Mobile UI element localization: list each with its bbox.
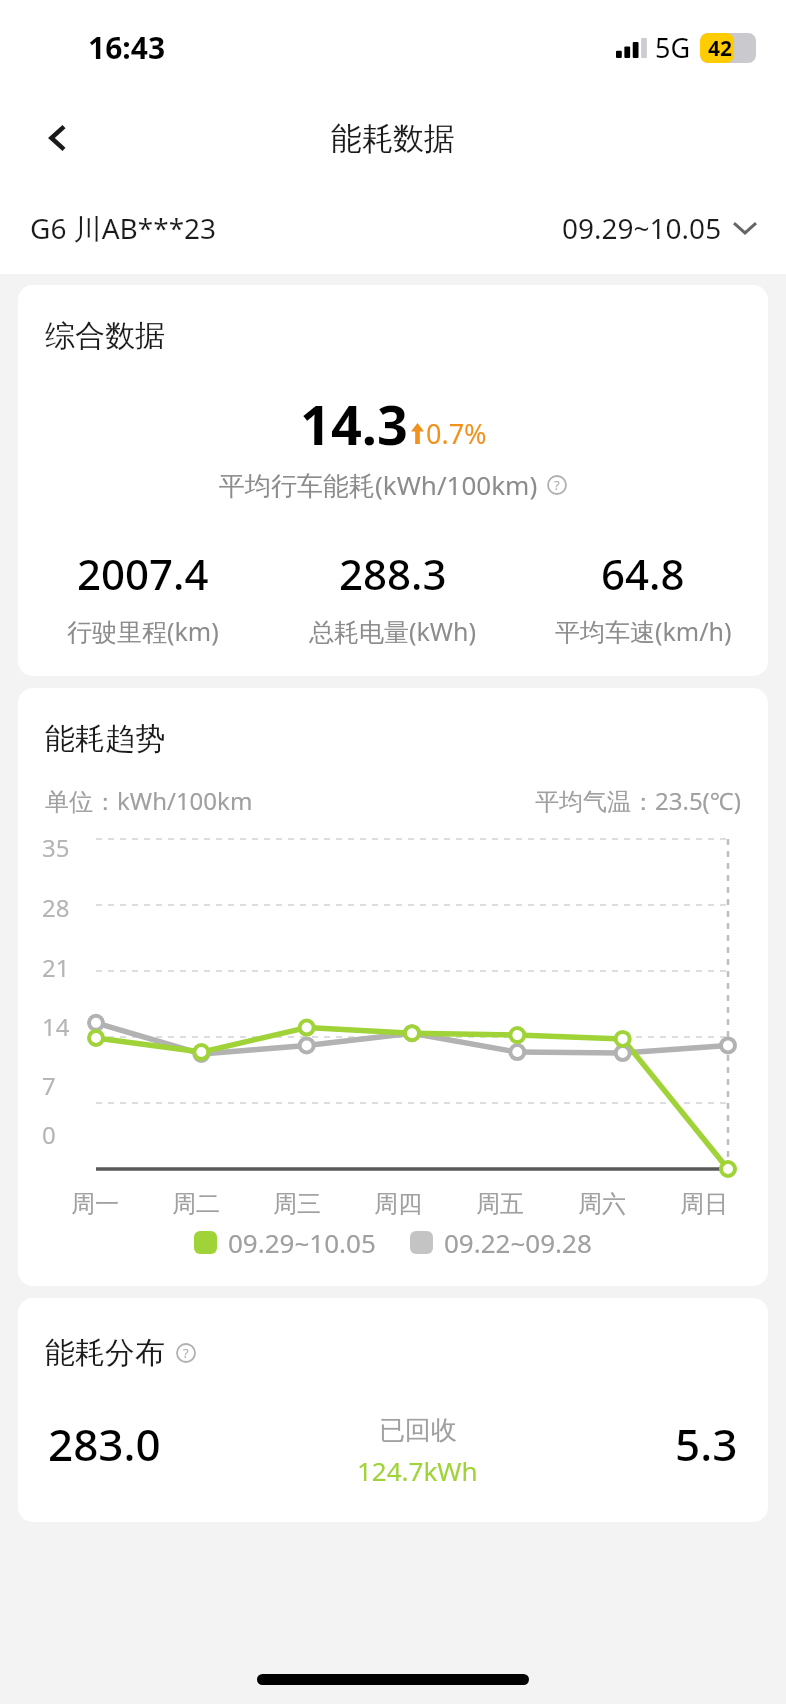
staticText: 0.7% <box>426 415 487 452</box>
button[interactable]: 09.29~10.05 <box>194 1225 376 1260</box>
button[interactable]: 09.29~10.05 <box>562 209 756 247</box>
staticText: 综合数据 <box>45 317 165 355</box>
staticText: 能耗数据 <box>331 119 455 158</box>
staticText: 14 <box>42 1010 70 1043</box>
staticText: 平均行车能耗(kWh/100km) <box>219 467 538 503</box>
staticText: 64.8 <box>601 545 685 602</box>
staticText: 21 <box>42 951 70 984</box>
button[interactable]: 综合数据 <box>18 285 768 676</box>
staticText: 平均气温：23.5(℃) <box>535 784 741 817</box>
staticText: 283.0 <box>48 1414 161 1474</box>
staticText: 周五 <box>476 1189 524 1219</box>
button[interactable]: 64.8 <box>518 545 768 648</box>
staticText: 0 <box>42 1118 56 1151</box>
staticText: 09.29~10.05 <box>228 1225 376 1260</box>
staticText: 单位：kWh/100km <box>45 784 253 817</box>
staticText: 2007.4 <box>77 545 209 602</box>
button[interactable]: 09.22~09.28 <box>410 1225 592 1260</box>
staticText: 42 <box>708 34 733 63</box>
staticText: ? <box>183 1344 189 1362</box>
staticText: 28 <box>42 891 70 924</box>
staticText: 周三 <box>273 1189 321 1219</box>
button[interactable]: 288.3 <box>268 545 518 648</box>
button[interactable]: 2007.4 <box>18 545 268 648</box>
staticText: 能耗趋势 <box>45 720 165 758</box>
staticText: 5G <box>655 29 691 66</box>
staticText: 周日 <box>680 1189 728 1219</box>
staticText: 周六 <box>578 1189 626 1219</box>
staticText: 09.22~09.28 <box>444 1225 592 1260</box>
staticText: 16:43 <box>88 27 166 68</box>
staticText: 周四 <box>374 1189 422 1219</box>
staticText: 平均车速(km/h) <box>555 614 732 648</box>
staticText: G6 川AB***23 <box>30 209 217 247</box>
staticText: 14.3 <box>300 387 408 461</box>
staticText: 总耗电量(kWh) <box>309 614 477 648</box>
button[interactable]: Back <box>30 110 86 166</box>
staticText: 288.3 <box>339 545 447 602</box>
staticText: 行驶里程(km) <box>67 614 219 648</box>
staticText: 7 <box>42 1069 56 1102</box>
staticText: ? <box>554 476 560 494</box>
staticText: 124.7kWh <box>357 1453 478 1488</box>
staticText: 周一 <box>71 1189 119 1219</box>
staticText: 已回收 <box>379 1414 457 1447</box>
staticText: 5.3 <box>675 1414 738 1474</box>
staticText: 周二 <box>172 1189 220 1219</box>
staticText: 09.29~10.05 <box>562 209 722 247</box>
staticText: 35 <box>42 831 70 864</box>
staticText: 能耗分布 <box>45 1334 165 1372</box>
